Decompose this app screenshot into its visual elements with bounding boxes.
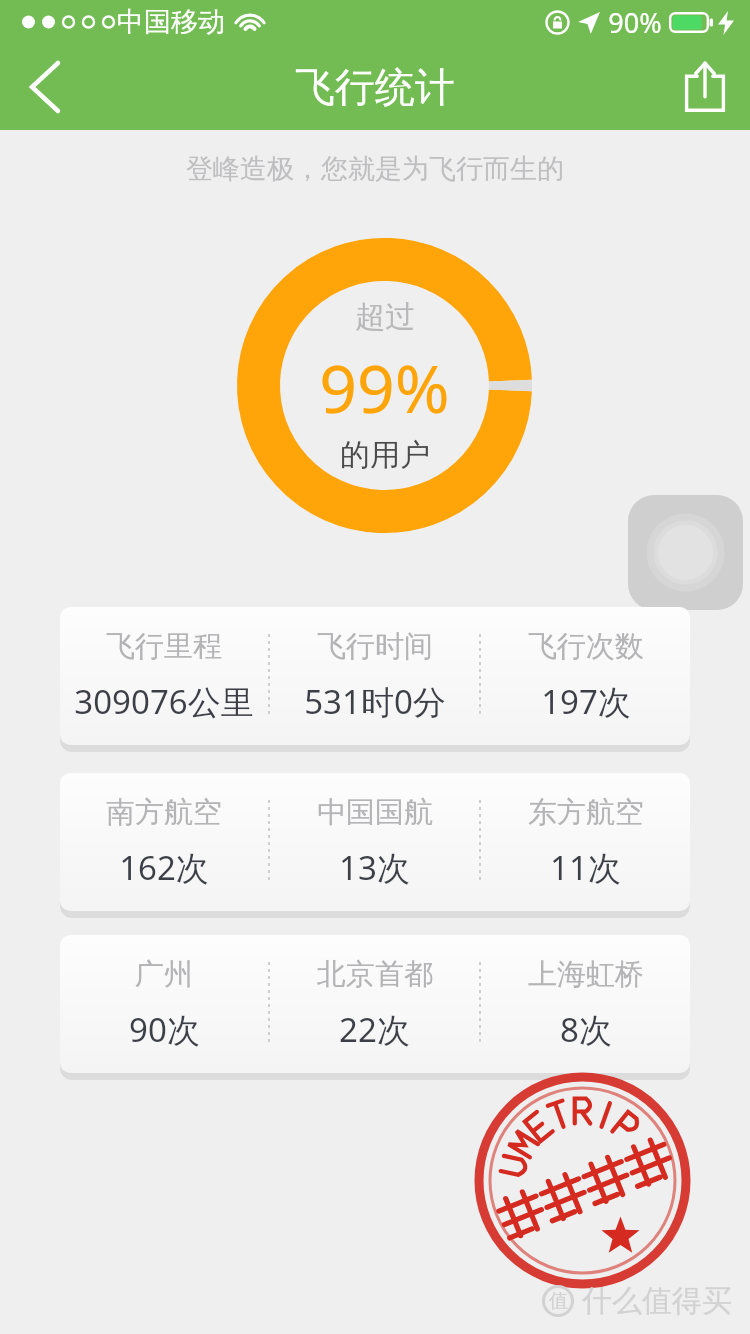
- staticText: 飞行里程: [106, 628, 222, 665]
- staticText: 197次: [541, 679, 631, 724]
- staticText: 值: [549, 1289, 568, 1313]
- staticText: 登峰造极，您就是为飞行而生的: [186, 152, 564, 186]
- staticText: 309076公里: [74, 679, 254, 724]
- button[interactable]: 广州: [60, 935, 690, 1073]
- button[interactable]: Back: [0, 44, 90, 130]
- staticText: 中国移动: [117, 5, 225, 39]
- staticText: 99%: [319, 342, 450, 432]
- button[interactable]: AssistiveTouch: [628, 495, 743, 610]
- staticText: 22次: [339, 1007, 410, 1052]
- staticText: 什么值得买: [582, 1282, 732, 1320]
- staticText: 13次: [339, 845, 410, 890]
- staticText: 上海虹桥: [528, 956, 644, 993]
- staticText: 东方航空: [528, 794, 644, 831]
- staticText: 中国国航: [317, 794, 433, 831]
- staticText: 广州: [135, 956, 193, 993]
- button[interactable]: 南方航空: [60, 773, 690, 911]
- staticText: 飞行次数: [528, 628, 644, 665]
- staticText: 11次: [550, 845, 621, 890]
- button[interactable]: Share: [660, 44, 750, 130]
- staticText: 162次: [119, 845, 209, 890]
- button[interactable]: 飞行里程: [60, 607, 690, 745]
- staticText: 的用户: [340, 436, 430, 474]
- staticText: 南方航空: [106, 794, 222, 831]
- staticText: 90%: [608, 4, 662, 41]
- staticText: 8次: [560, 1007, 612, 1052]
- staticText: 北京首都: [317, 956, 433, 993]
- staticText: 飞行统计: [295, 62, 455, 112]
- staticText: 90次: [129, 1007, 200, 1052]
- staticText: 飞行时间: [317, 628, 433, 665]
- staticText: 531时0分: [304, 679, 446, 724]
- staticText: 超过: [355, 298, 415, 336]
